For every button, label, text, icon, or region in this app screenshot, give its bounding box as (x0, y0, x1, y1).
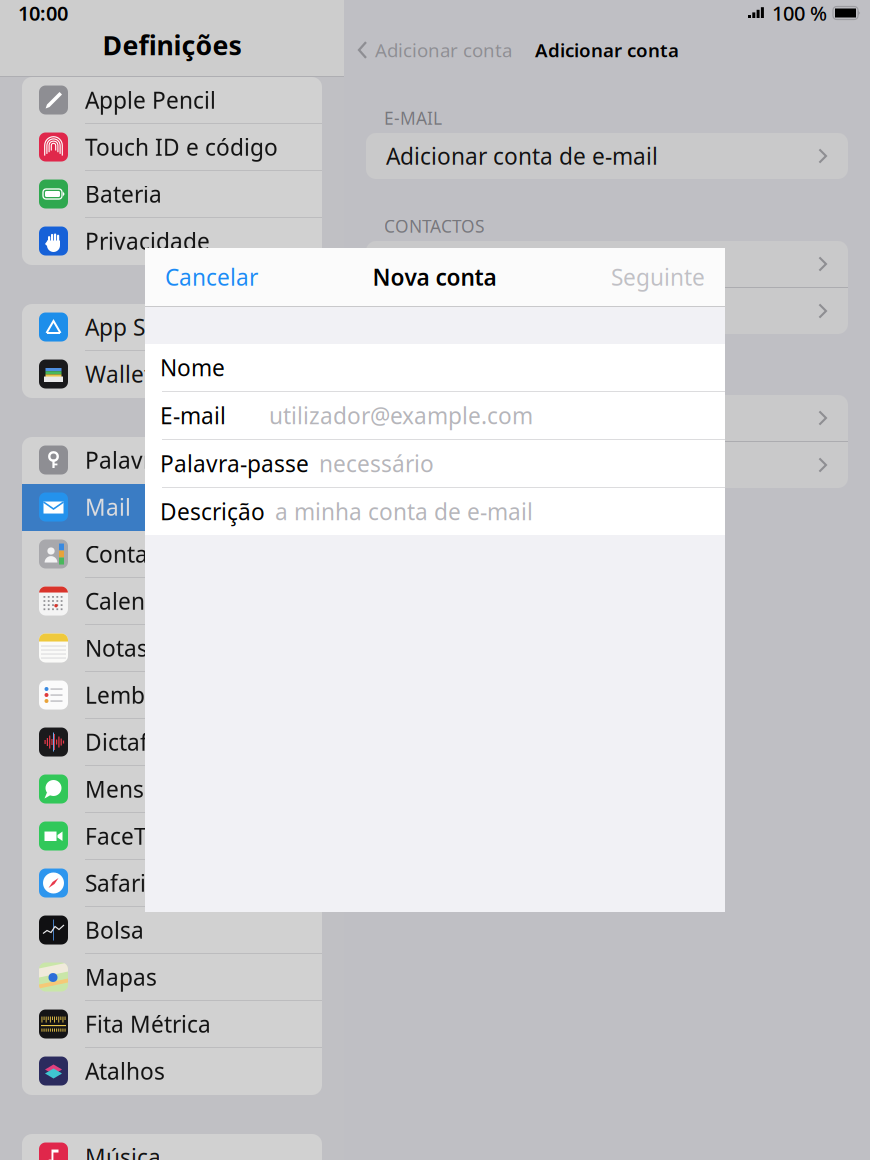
button[interactable]: Fita Métrica (22, 1001, 322, 1048)
staticText: utilizador@example.com (269, 400, 533, 430)
button[interactable]: FaceTime (22, 813, 322, 860)
staticText: Wallet e Apple Pay (85, 359, 283, 389)
staticText: 100 % (772, 0, 827, 26)
staticText: Música (85, 1142, 161, 1160)
staticText: CALENDÁRIOS (384, 368, 502, 391)
staticText: Contactos (85, 539, 192, 569)
staticText: Nome (160, 352, 225, 382)
staticText: Lembretes (85, 680, 199, 710)
staticText: Atalhos (85, 1056, 165, 1086)
button[interactable]: Conta LDAP (366, 288, 848, 334)
staticText: Adicionar conta (375, 38, 512, 62)
staticText: Privacidade (85, 226, 210, 256)
button[interactable]: Wallet e Apple Pay (22, 351, 322, 398)
button[interactable]: Privacidade (22, 218, 322, 265)
button[interactable]: Safari (22, 860, 322, 907)
staticText: Adicionar conta de e-mail (386, 141, 658, 171)
button[interactable]: Atalhos (22, 1048, 322, 1095)
button[interactable]: Contactos (22, 531, 322, 578)
button[interactable]: Música (22, 1134, 322, 1160)
staticText: Mapas (85, 962, 157, 992)
staticText: Calendário (85, 586, 201, 616)
staticText: Bolsa (85, 915, 144, 945)
staticText: 10:00 (18, 0, 68, 26)
button[interactable]: Notas (22, 625, 322, 672)
staticText: Definições (102, 27, 241, 63)
button[interactable]: Mail (22, 484, 322, 531)
staticText: CONTACTOS (384, 214, 485, 237)
button[interactable]: Adicionar conta de contactos (366, 241, 848, 287)
staticText: Apple Pencil (85, 85, 216, 115)
staticText: Nova conta (372, 262, 496, 292)
button[interactable]: Bolsa (22, 907, 322, 954)
button[interactable]: Calendário (22, 578, 322, 625)
staticText: Fita Métrica (85, 1009, 211, 1039)
staticText: App Store (85, 312, 189, 342)
staticText: a minha conta de e-mail (275, 496, 533, 526)
button[interactable]: Lembretes (22, 672, 322, 719)
staticText: E-mail (160, 400, 226, 430)
button[interactable]: Adicionar conta de calendário (366, 395, 848, 441)
button[interactable]: Adicionar conta (344, 26, 512, 74)
button[interactable]: App Store (22, 304, 322, 351)
staticText: Adicionar calendário subscrito (386, 450, 710, 480)
staticText: necessário (319, 448, 434, 478)
button[interactable]: Mapas (22, 954, 322, 1001)
staticText: FaceTime (85, 821, 187, 851)
staticText: E-MAIL (384, 106, 442, 129)
staticText: Descrição (160, 496, 265, 526)
staticText: Mail (85, 492, 131, 522)
staticText: Adicionar conta (535, 38, 679, 62)
button[interactable]: Bateria (22, 171, 322, 218)
button[interactable]: Touch ID e código (22, 124, 322, 171)
staticText: Mensagens (85, 774, 209, 804)
button[interactable]: Adicionar conta de e-mail (366, 133, 848, 179)
staticText: Safari (85, 868, 146, 898)
staticText: Palavras-passe (85, 445, 245, 475)
button[interactable]: Dictafone (22, 719, 322, 766)
staticText: Touch ID e código (85, 132, 278, 162)
button[interactable]: Adicionar calendário subscrito (366, 442, 848, 488)
staticText: Bateria (85, 179, 162, 209)
staticText: Conta LDAP (386, 296, 511, 326)
button[interactable]: Apple Pencil (22, 77, 322, 124)
staticText: Adicionar conta de calendário (386, 403, 705, 433)
staticText: Palavra-passe (160, 448, 309, 478)
button[interactable]: Palavras-passe (22, 437, 322, 484)
button[interactable]: Seguinte (611, 248, 725, 306)
button[interactable]: Cancelar (145, 248, 258, 306)
button[interactable]: Mensagens (22, 766, 322, 813)
staticText: Dictafone (85, 727, 189, 757)
staticText: Seguinte (611, 262, 705, 292)
staticText: Notas (85, 633, 148, 663)
staticText: Adicionar conta de contactos (386, 249, 696, 279)
staticText: Cancelar (165, 262, 258, 292)
